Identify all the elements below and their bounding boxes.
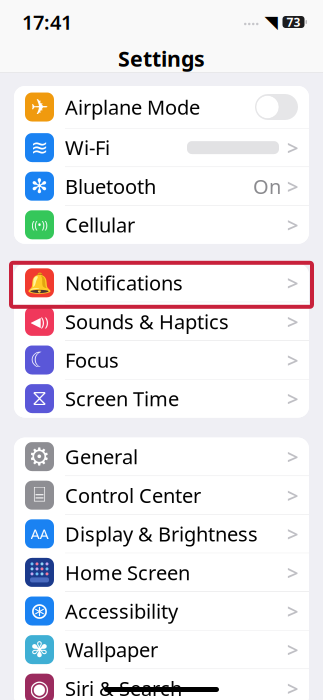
button[interactable]: ◀)) — [14, 302, 309, 341]
staticText: > — [287, 173, 298, 199]
staticText: > — [287, 269, 298, 296]
staticText: ✻ — [31, 175, 48, 198]
staticText: Sounds & Haptics — [65, 308, 229, 335]
staticText: ≋ — [30, 135, 48, 160]
staticText: 🔔 — [27, 271, 52, 294]
staticText: ⚙ — [28, 443, 50, 470]
button[interactable]: ✈ — [14, 86, 309, 129]
button[interactable]: ⚙ — [14, 438, 309, 476]
staticText: > — [287, 134, 298, 161]
staticText: ✾ — [30, 637, 48, 662]
staticText: 17:41 — [22, 9, 72, 35]
button[interactable]: ⧖ — [14, 380, 309, 418]
button[interactable]: ≋ — [14, 129, 309, 167]
staticText: > — [287, 482, 298, 508]
button[interactable]: ◉ — [14, 669, 309, 700]
staticText: Siri & Search — [65, 675, 182, 700]
staticText: ⧖ — [32, 388, 47, 409]
staticText: > — [287, 347, 298, 373]
button[interactable]: ✻ — [14, 167, 309, 206]
button[interactable]: ((•)) — [14, 206, 309, 244]
staticText: ((•)) — [31, 218, 47, 232]
staticText: Settings — [118, 44, 205, 73]
staticText: Display & Brightness — [65, 520, 258, 547]
staticText: ◥ — [264, 12, 277, 32]
staticText: Wi-Fi — [65, 134, 110, 161]
staticText: > — [287, 211, 298, 238]
button[interactable]: ⊛ — [14, 592, 309, 631]
staticText: > — [287, 559, 298, 586]
staticText: Home Screen — [65, 559, 190, 586]
staticText: ☾ — [30, 348, 49, 372]
staticText: ⊛ — [30, 598, 49, 624]
staticText: ⌸ — [33, 485, 46, 506]
button[interactable]: AA — [14, 515, 309, 553]
staticText: AA — [30, 524, 48, 544]
staticText: > — [287, 520, 298, 547]
staticText: > — [287, 598, 298, 624]
staticText: Screen Time — [65, 385, 179, 412]
button[interactable]: 🔔 — [14, 264, 309, 302]
staticText: Notifications — [65, 269, 183, 296]
staticText: > — [287, 675, 298, 700]
staticText: Focus — [65, 347, 119, 373]
staticText: > — [287, 308, 298, 335]
staticText: Wallpaper — [65, 636, 158, 663]
button[interactable]: ⌸ — [14, 476, 309, 515]
staticText: > — [287, 636, 298, 663]
staticText: ◀)) — [30, 312, 48, 330]
staticText: Control Center — [65, 482, 201, 508]
button[interactable]: ☾ — [14, 341, 309, 380]
staticText: Accessibility — [65, 598, 178, 624]
staticText: > — [287, 385, 298, 412]
staticText: General — [65, 443, 138, 470]
staticText: Cellular — [65, 211, 135, 238]
button[interactable]: Home Screen — [14, 553, 309, 592]
staticText: 73 — [286, 14, 300, 30]
staticText: Bluetooth — [65, 173, 156, 199]
staticText: > — [287, 443, 298, 470]
staticText: ✈ — [30, 95, 48, 119]
staticText: ◉ — [29, 675, 49, 700]
staticText: On — [253, 173, 281, 199]
button[interactable]: ✾ — [14, 631, 309, 669]
staticText: Airplane Mode — [65, 94, 200, 120]
